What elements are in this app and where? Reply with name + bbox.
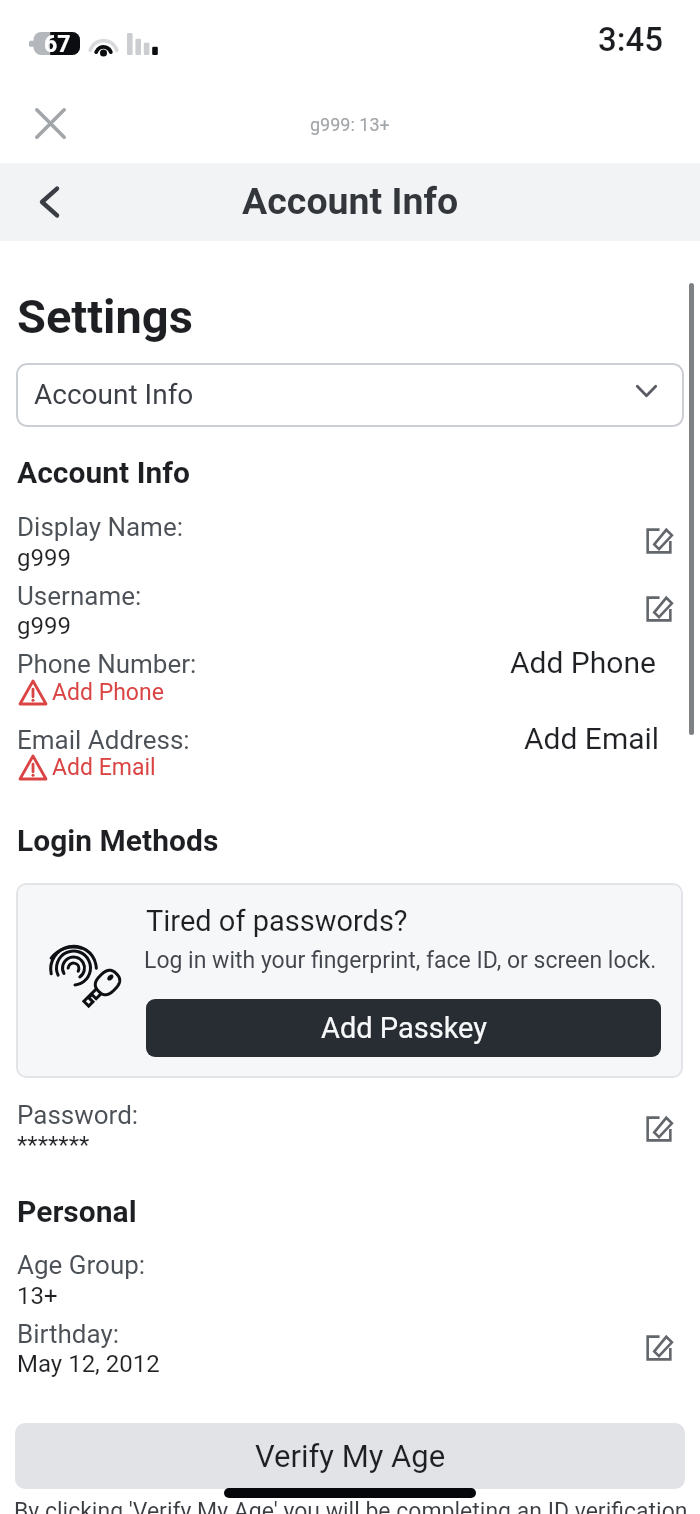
button[interactable]: Edit display name <box>636 518 682 564</box>
staticText: Login Methods <box>17 823 219 858</box>
staticText: g999 <box>17 544 71 572</box>
staticText: 13+ <box>17 1282 58 1310</box>
button[interactable]: Add Email <box>524 721 660 756</box>
button[interactable]: Add Passkey <box>146 999 661 1057</box>
staticText: May 12, 2012 <box>17 1350 160 1378</box>
staticText: g999 <box>17 612 71 640</box>
staticText: 3:45 <box>598 20 664 59</box>
staticText: Personal <box>17 1194 137 1229</box>
staticText: Phone Number: <box>17 649 197 679</box>
staticText: Add Passkey <box>321 1011 487 1045</box>
button[interactable]: Add Phone <box>18 679 164 706</box>
staticText: Account Info <box>242 179 459 223</box>
staticText: Add Phone <box>52 679 164 706</box>
staticText: Password: <box>17 1100 139 1130</box>
staticText: Birthday: <box>17 1319 120 1349</box>
staticText: Display Name: <box>17 512 184 542</box>
staticText: g999: 13+ <box>310 114 390 135</box>
staticText: Email Address: <box>17 725 190 755</box>
staticText: 67 <box>44 31 71 54</box>
staticText: Add Email <box>524 721 660 756</box>
button[interactable]: Close <box>22 96 78 150</box>
staticText: Account Info <box>17 455 190 490</box>
staticText: Tired of passwords? <box>146 904 408 938</box>
staticText: ******* <box>17 1131 90 1159</box>
staticText: By clicking 'Verify My Age' you will be … <box>14 1498 688 1514</box>
staticText: Add Email <box>52 754 156 781</box>
button[interactable]: Account Info <box>16 363 684 427</box>
button[interactable]: Add Email <box>18 754 156 781</box>
staticText: Settings <box>17 289 193 344</box>
button[interactable]: Add Phone <box>510 645 656 680</box>
staticText: Age Group: <box>17 1250 146 1280</box>
button[interactable]: Edit birthday <box>636 1325 682 1371</box>
staticText: Add Phone <box>510 645 656 680</box>
button[interactable]: Edit password <box>636 1106 682 1152</box>
button[interactable]: Back <box>20 172 80 232</box>
button[interactable]: Verify My Age <box>15 1423 685 1489</box>
staticText: Verify My Age <box>255 1438 446 1474</box>
staticText: Log in with your fingerprint, face ID, o… <box>144 947 657 974</box>
staticText: Username: <box>17 581 142 611</box>
staticText: Account Info <box>34 378 194 411</box>
button[interactable]: Edit username <box>636 586 682 632</box>
